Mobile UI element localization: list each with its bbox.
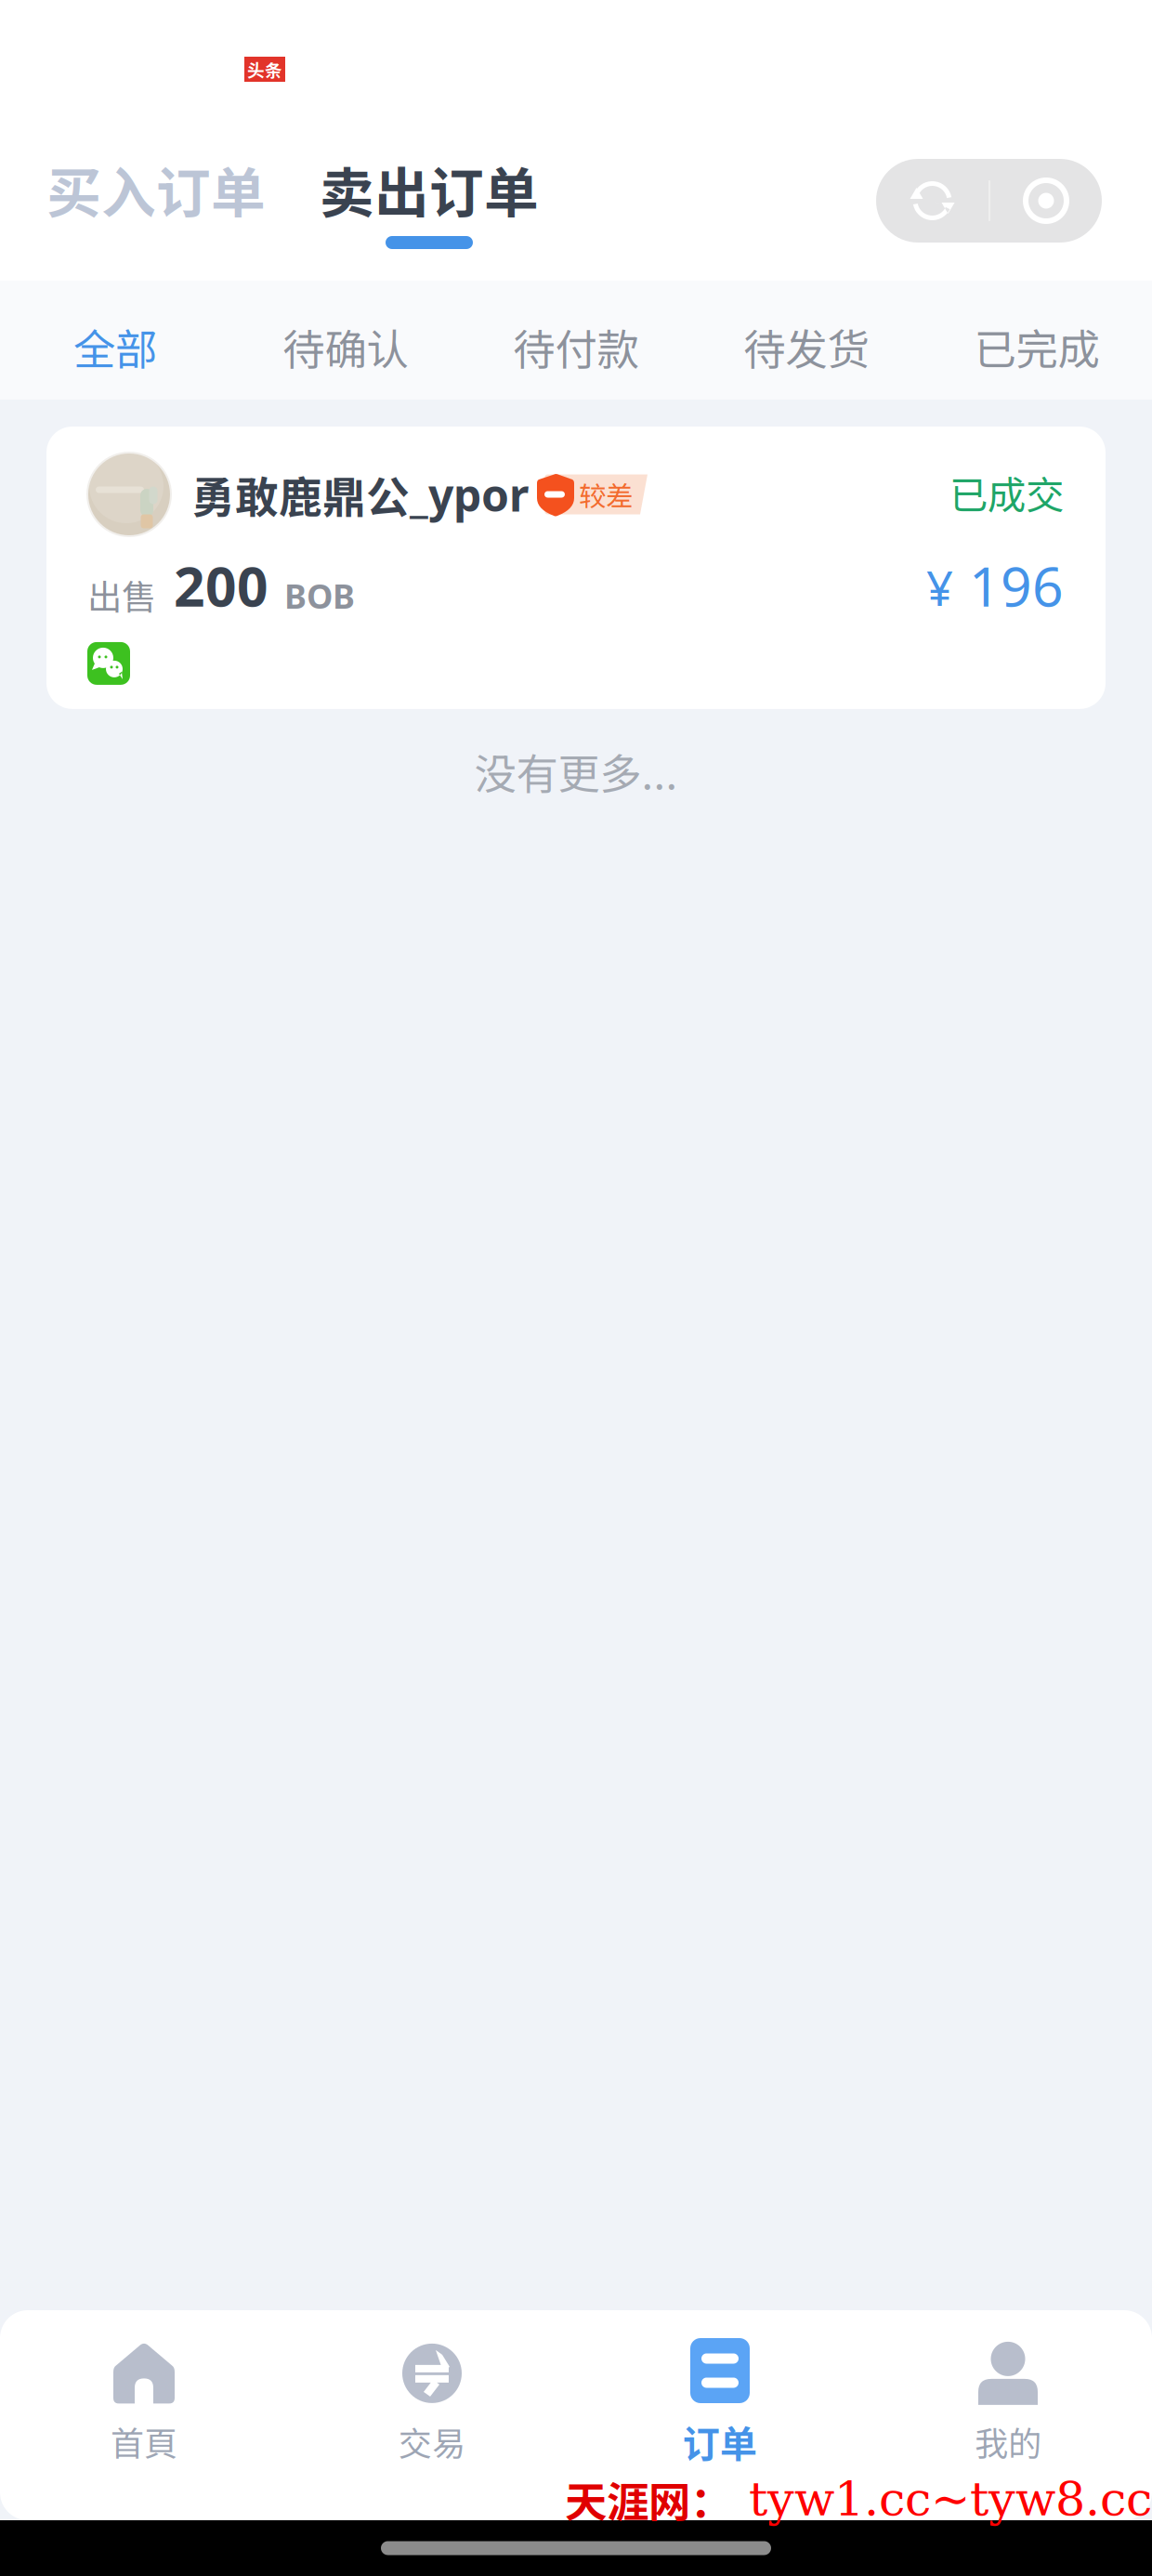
button[interactable]: 订单 — [576, 2338, 864, 2468]
staticText: 买入订单 — [46, 150, 266, 229]
staticText: 首頁 — [111, 2417, 177, 2465]
staticText: _ypor — [410, 465, 529, 524]
button[interactable]: 买入订单 — [46, 150, 266, 249]
staticText: ¥ — [926, 556, 953, 619]
button[interactable]: 待付款 — [461, 281, 691, 400]
staticText: 较差 — [579, 475, 633, 514]
staticText: tyw1.cc~tyw8.cc — [749, 2472, 1152, 2526]
button[interactable]: 待发货 — [691, 281, 922, 400]
staticText: 交易 — [399, 2417, 465, 2465]
staticText: 卖出订单 — [320, 150, 539, 229]
staticText: 196 — [969, 549, 1064, 622]
staticText: 头条 — [247, 57, 282, 82]
staticText: 待付款 — [513, 316, 639, 377]
button[interactable]: 交易 — [288, 2341, 576, 2465]
staticText: 天涯网： — [565, 2469, 732, 2530]
staticText: 待确认 — [283, 316, 408, 377]
staticText: 已成交 — [949, 465, 1064, 520]
staticText: 没有更多... — [474, 741, 678, 802]
staticText: 出售 — [87, 569, 156, 620]
staticText: 勇敢鹿鼎公 — [191, 463, 410, 526]
button[interactable]: 全部 — [0, 281, 230, 400]
staticText: 已完成 — [974, 316, 1100, 377]
button[interactable]: 我的 — [864, 2341, 1152, 2465]
staticText: 我的 — [975, 2417, 1041, 2465]
button[interactable]: 首頁 — [0, 2341, 288, 2465]
staticText: 200 — [174, 549, 268, 622]
staticText: 订单 — [683, 2414, 757, 2468]
staticText: BOB — [284, 573, 355, 618]
button[interactable]: 卖出订单 — [266, 150, 539, 249]
staticText: 全部 — [73, 316, 157, 377]
staticText: 待发货 — [744, 316, 869, 377]
button[interactable]: 已完成 — [922, 281, 1152, 400]
button[interactable]: 待确认 — [230, 281, 461, 400]
button[interactable]: Refresh — [876, 159, 1102, 249]
